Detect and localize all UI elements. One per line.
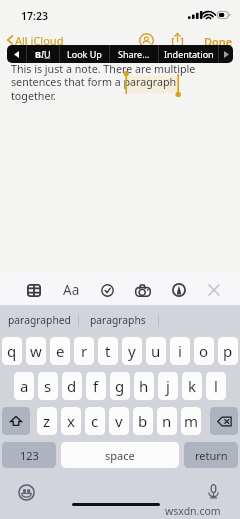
staticText: j [166, 376, 170, 396]
button[interactable]: Dictate [205, 483, 222, 500]
button[interactable]: Look Up [60, 45, 109, 63]
staticText: a [20, 376, 29, 396]
button[interactable]: c [85, 407, 105, 435]
button[interactable]: r [74, 337, 94, 365]
staticText: r [81, 341, 88, 361]
staticText: together. [11, 89, 56, 104]
staticText: q [7, 341, 17, 361]
button[interactable] [7, 45, 26, 63]
staticText: return [195, 448, 228, 463]
staticText: o [199, 341, 209, 361]
staticText: k [188, 376, 197, 396]
staticText: space [105, 448, 135, 463]
staticText: g [115, 376, 125, 396]
staticText: sentences that form a paragraph [11, 75, 177, 90]
staticText: h [139, 376, 149, 396]
button[interactable]: x [61, 407, 81, 435]
staticText: x [67, 411, 75, 431]
staticText: Look Up [67, 48, 102, 60]
button[interactable]: Add people [139, 33, 154, 48]
button[interactable]: t [98, 337, 118, 365]
staticText: w [30, 341, 42, 361]
button[interactable]: return [184, 442, 238, 468]
staticText: v [115, 411, 123, 431]
button[interactable]: Done [204, 34, 233, 49]
button[interactable]: 123 [2, 442, 56, 468]
staticText: t [105, 341, 111, 361]
staticText: n [162, 411, 172, 431]
staticText: f [93, 376, 99, 396]
staticText: c [91, 411, 99, 431]
button[interactable]: o [194, 337, 214, 365]
button[interactable]: w [26, 337, 46, 365]
button[interactable]: Backspace [210, 407, 238, 435]
button[interactable]: Checklist [96, 279, 118, 301]
staticText: e [56, 341, 65, 361]
staticText: U [44, 48, 51, 60]
button[interactable]: n [157, 407, 177, 435]
button[interactable]: a [14, 372, 34, 400]
staticText: s [44, 376, 52, 396]
staticText: z [43, 411, 51, 431]
button[interactable]: Shift [2, 407, 30, 435]
button[interactable]: space [61, 442, 179, 468]
button[interactable]: m [181, 407, 201, 435]
staticText: b [138, 411, 148, 431]
button[interactable]: paragraphs [78, 305, 158, 335]
button[interactable] [219, 45, 233, 63]
staticText: B [35, 48, 41, 60]
button[interactable]: All iCloud [7, 33, 64, 47]
button[interactable]: e [50, 337, 70, 365]
button[interactable]: Hide keyboard [203, 279, 225, 301]
button[interactable]: paragraphed [0, 305, 78, 335]
button[interactable]: B [27, 45, 59, 63]
button[interactable]: d [62, 372, 82, 400]
button[interactable]: b [133, 407, 153, 435]
button[interactable]: g [110, 372, 130, 400]
staticText: l [214, 376, 218, 396]
staticText: All iCloud [15, 33, 64, 47]
button[interactable]: Markup [168, 279, 190, 301]
button[interactable]: q [2, 337, 22, 365]
button[interactable]: i [170, 337, 190, 365]
button[interactable]: p [218, 337, 238, 365]
button[interactable]: Share [170, 32, 185, 47]
staticText: y [128, 341, 136, 361]
staticText: This is just a note. There are multiple [11, 62, 196, 77]
button[interactable]: h [134, 372, 154, 400]
button[interactable]: k [182, 372, 202, 400]
button[interactable]: Table [23, 279, 45, 301]
staticText: paragraphed [8, 313, 71, 327]
staticText: 17:23 [21, 9, 48, 23]
button[interactable]: Share... [110, 45, 158, 63]
button[interactable]: u [146, 337, 166, 365]
staticText: wsxdn.com [165, 504, 221, 518]
staticText: I [41, 48, 44, 60]
button[interactable]: v [109, 407, 129, 435]
button[interactable]: z [37, 407, 57, 435]
button[interactable]: Camera [132, 279, 154, 301]
button[interactable]: f [86, 372, 106, 400]
button[interactable]: j [158, 372, 178, 400]
staticText: Share... [118, 48, 150, 60]
staticText: paragraphs [90, 313, 146, 327]
staticText: 123 [20, 448, 39, 463]
button[interactable]: y [122, 337, 142, 365]
staticText: Aa [63, 281, 80, 299]
staticText: p [223, 341, 233, 361]
button[interactable]: Emoji [18, 484, 35, 501]
button[interactable]: Text format [60, 279, 82, 301]
button[interactable]: Indentation [159, 45, 218, 63]
staticText: u [151, 341, 161, 361]
staticText: d [67, 376, 77, 396]
staticText: m [184, 411, 199, 431]
button[interactable]: l [206, 372, 226, 400]
staticText: i [178, 341, 182, 361]
staticText: Indentation [164, 48, 214, 60]
button[interactable]: s [38, 372, 58, 400]
